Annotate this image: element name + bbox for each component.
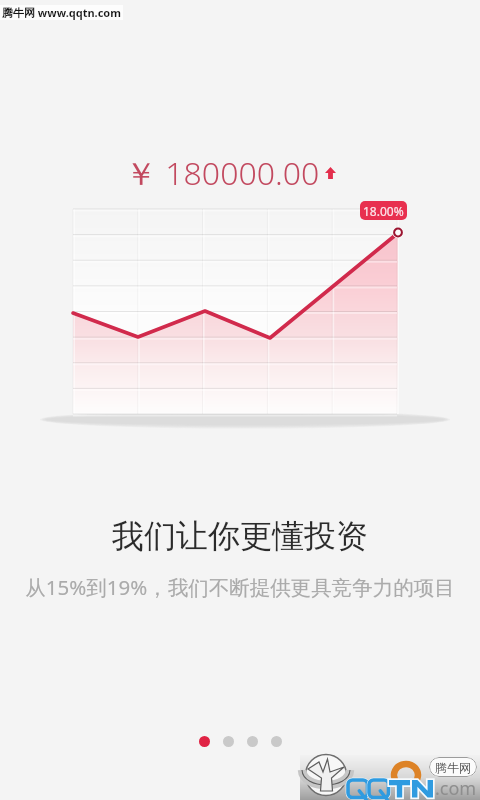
button[interactable]: Page 1 xyxy=(199,736,210,747)
staticText: 从15%到19%，我们不断提供更具竞争力的项目 xyxy=(25,573,455,601)
button[interactable]: Return rate 18.00 percent xyxy=(360,201,407,220)
staticText: 18.00% xyxy=(363,203,404,219)
button[interactable]: Page 3 xyxy=(247,736,258,747)
staticText: 我们让你更懂投资 xyxy=(112,516,368,556)
staticText: 腾牛网 www.qqtn.com xyxy=(2,5,121,20)
staticText: 腾牛网 xyxy=(435,760,471,775)
button[interactable]: Page 2 xyxy=(223,736,234,747)
button[interactable]: Page 4 xyxy=(271,736,282,747)
staticText: .com xyxy=(435,776,477,800)
staticText: ￥ 180000.00 xyxy=(125,151,320,195)
